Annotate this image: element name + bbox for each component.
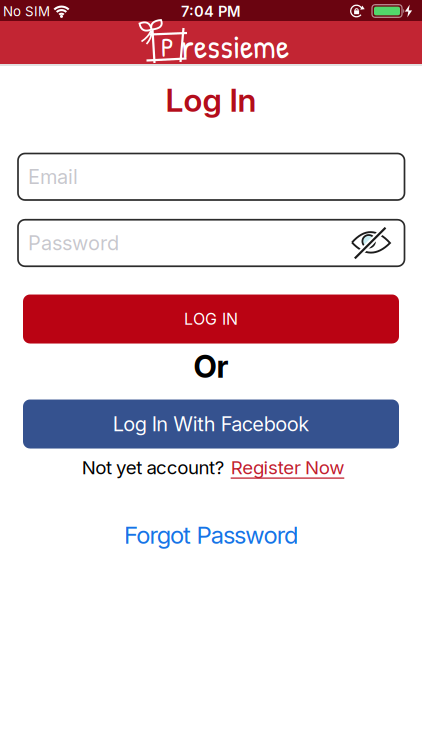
staticText: 7:04 PM bbox=[181, 3, 241, 20]
button[interactable]: Register Now bbox=[231, 456, 344, 478]
button[interactable]: Email bbox=[18, 153, 404, 200]
button[interactable]: Show password bbox=[348, 220, 392, 264]
button[interactable]: Password bbox=[18, 220, 404, 266]
staticText: Log In bbox=[165, 81, 256, 119]
staticText: Or bbox=[193, 348, 228, 385]
staticText: Log In With Facebook bbox=[113, 412, 309, 436]
staticText: Not yet account? bbox=[82, 456, 225, 478]
staticText: LOG IN bbox=[184, 310, 238, 328]
button[interactable]: Log In With Facebook bbox=[23, 399, 399, 448]
staticText: ressieme bbox=[181, 23, 289, 68]
staticText: Password bbox=[28, 231, 119, 255]
button[interactable]: Forgot Password bbox=[124, 521, 298, 549]
staticText: P bbox=[161, 29, 174, 65]
staticText: No SIM bbox=[3, 4, 50, 19]
staticText: Register Now bbox=[231, 456, 344, 478]
staticText: Forgot Password bbox=[124, 521, 298, 549]
button[interactable]: LOG IN bbox=[23, 294, 399, 343]
staticText: Email bbox=[28, 165, 78, 189]
